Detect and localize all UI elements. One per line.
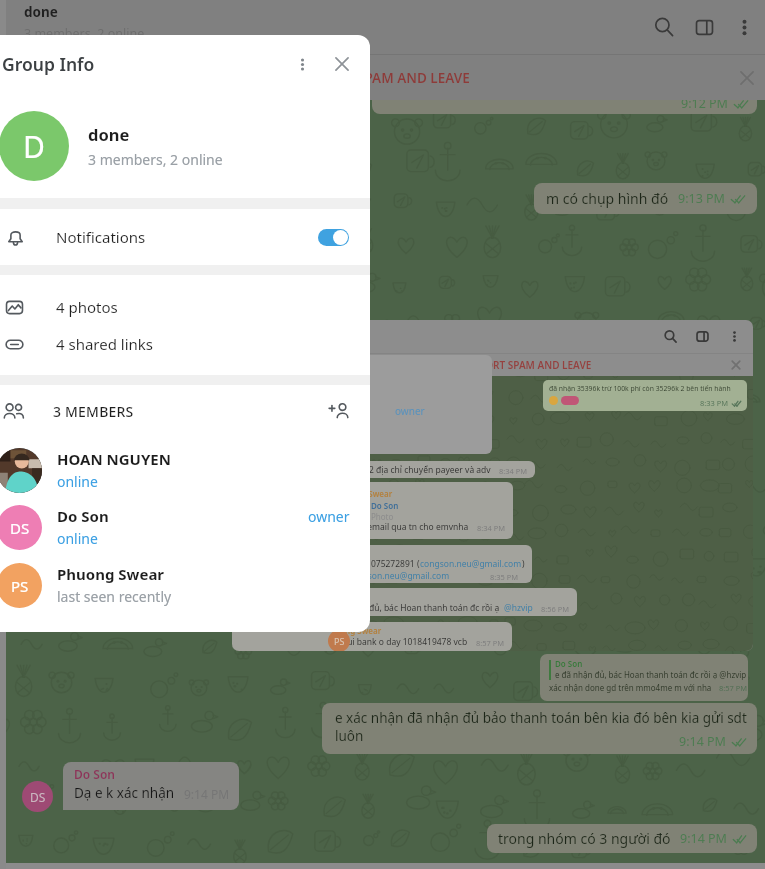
button[interactable]: D xyxy=(0,93,370,198)
staticText: PS xyxy=(11,576,29,596)
staticText: 8:35 PM xyxy=(490,572,519,582)
staticText: ) xyxy=(522,558,525,570)
staticText: 3 members, 2 online xyxy=(88,150,223,169)
staticText: 4 shared links xyxy=(56,334,154,354)
button[interactable]: Add member xyxy=(324,396,354,426)
staticText: owner xyxy=(395,404,425,418)
staticText: Do Son xyxy=(57,506,109,526)
staticText: PS xyxy=(334,635,345,647)
staticText: Dạ e k xác nhận xyxy=(74,784,175,802)
staticText: Group Info xyxy=(2,52,95,76)
staticText: done xyxy=(24,3,58,21)
staticText: 9:14 PM xyxy=(184,786,230,802)
staticText: 3 members, 2 online xyxy=(24,25,145,42)
staticText: done xyxy=(88,123,130,145)
staticText: online xyxy=(57,529,98,548)
staticText: yeer: P1075272891 ( xyxy=(339,558,420,570)
staticText: Do Son xyxy=(555,658,583,669)
staticText: online xyxy=(260,378,290,392)
staticText: online xyxy=(57,472,98,491)
staticText: congson.neu@gmail.com xyxy=(420,558,522,570)
staticText: 9:12 PM xyxy=(681,100,728,112)
staticText: Notifications xyxy=(56,227,146,247)
staticText: 8:56 PM xyxy=(541,604,570,614)
staticText: 8:57 PM xyxy=(719,683,748,693)
staticText: m có chụp hình đó xyxy=(546,189,669,208)
staticText: D xyxy=(23,126,45,167)
button[interactable]: Close xyxy=(325,47,359,81)
button[interactable]: Search xyxy=(644,7,684,47)
staticText: REPORT SPAM AND LEAVE xyxy=(302,69,470,87)
staticText: DS xyxy=(30,789,46,805)
button[interactable]: Close xyxy=(733,64,761,92)
button[interactable]: HOAN NGUYEN xyxy=(0,441,370,499)
staticText: e đã nhận đủ, bác Hoan thanh toán đc rồi… xyxy=(555,669,747,680)
staticText: last seen recently xyxy=(57,587,172,606)
staticText: ìn gửi 2 địa chỉ chuyển payeer và adv xyxy=(344,464,491,476)
staticText: @hzvip xyxy=(504,602,533,614)
staticText: owner xyxy=(308,507,350,526)
staticText: uong Swear xyxy=(335,625,382,636)
staticText: 8:33 PM xyxy=(700,398,729,408)
button[interactable]: Notifications xyxy=(0,209,370,265)
staticText: 9:14 PM xyxy=(680,830,727,847)
staticText: Do Son xyxy=(74,766,115,782)
staticText: uong Swear xyxy=(346,488,393,499)
staticText: 8:34 PM xyxy=(477,523,506,533)
staticText: congson.neu@gmail.com xyxy=(348,570,450,582)
button[interactable]: DS xyxy=(0,498,370,556)
staticText: Do Son xyxy=(371,500,399,511)
button[interactable]: 4 shared links xyxy=(0,325,370,363)
staticText: c gui email qua tn cho emvnha xyxy=(346,521,469,533)
staticText: xác nhận done gd trên mmo4me m với nha xyxy=(549,682,712,693)
staticText: 3 MEMBERS xyxy=(53,402,134,421)
staticText: 9:14 PM xyxy=(679,733,726,750)
button[interactable]: Toggle panel xyxy=(684,7,724,47)
button[interactable]: More options xyxy=(724,7,764,47)
staticText: e xác nhận đã nhận đủ bảo thanh toán bên… xyxy=(335,709,747,745)
staticText: 4 photos xyxy=(56,297,118,317)
staticText: 8:34 PM xyxy=(499,466,528,476)
staticText: đã nhận 35396k trừ 100k phí còn 35296k 2… xyxy=(549,384,731,393)
staticText: trong nhóm có 3 người đó xyxy=(498,829,671,848)
staticText: lã nhận đủ, bác Hoan thanh toán đc rồi ạ xyxy=(337,602,500,614)
staticText: DS xyxy=(10,518,30,538)
staticText: HOAN NGUYEN xyxy=(260,364,340,378)
staticText: REPORT SPAM AND LEAVE xyxy=(467,358,592,372)
button[interactable]: PS xyxy=(0,556,370,614)
staticText: E gui bank o day 1018419478 vcb xyxy=(335,636,468,648)
button[interactable]: More options xyxy=(285,47,319,81)
staticText: Phuong Swear xyxy=(57,564,165,584)
staticText: Photo xyxy=(371,511,394,522)
staticText: HOAN NGUYEN xyxy=(57,449,171,469)
staticText: 9:13 PM xyxy=(678,190,725,207)
button[interactable]: 4 photos xyxy=(0,288,370,326)
staticText: 8:57 PM xyxy=(476,638,505,648)
